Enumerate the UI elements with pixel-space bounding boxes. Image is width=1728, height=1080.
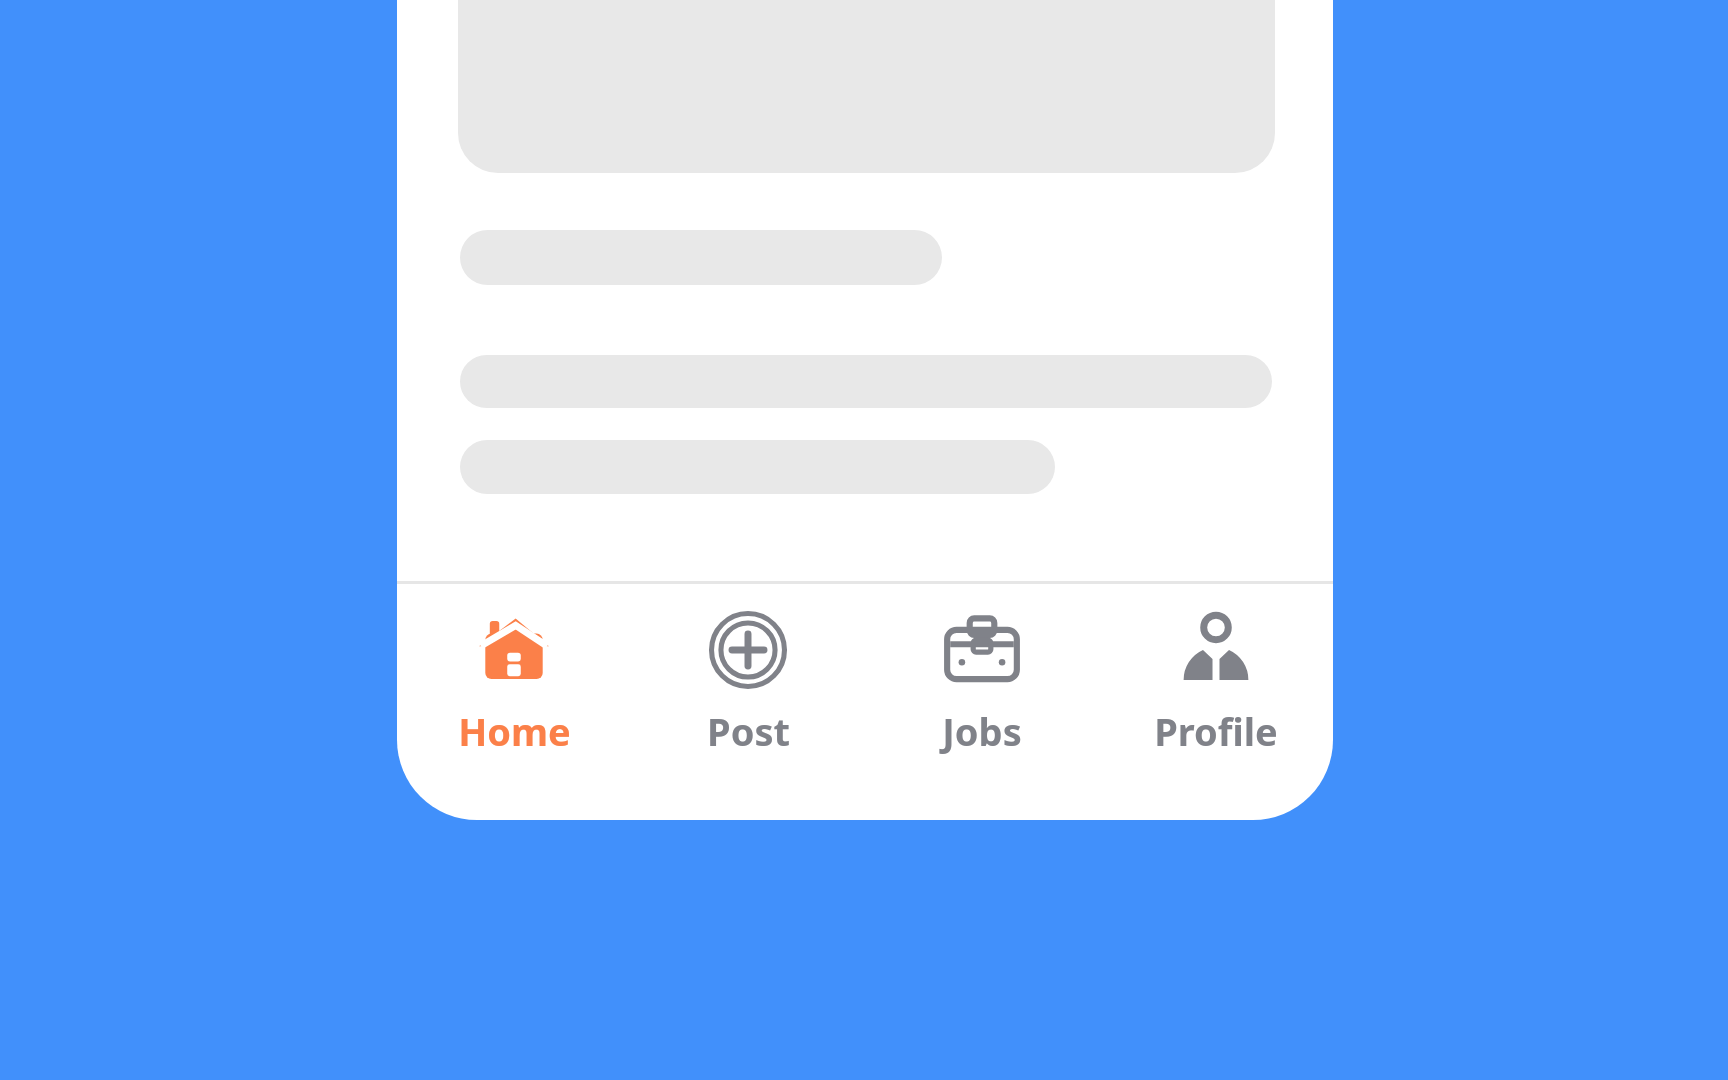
button[interactable]: Post xyxy=(631,584,865,757)
button[interactable]: Jobs xyxy=(865,584,1099,757)
staticText: Home xyxy=(458,705,571,757)
button[interactable]: Profile xyxy=(1099,584,1333,757)
staticText: Post xyxy=(707,705,790,757)
button[interactable]: Home xyxy=(397,584,631,757)
staticText: Profile xyxy=(1154,705,1278,757)
staticText: Jobs xyxy=(942,705,1022,757)
